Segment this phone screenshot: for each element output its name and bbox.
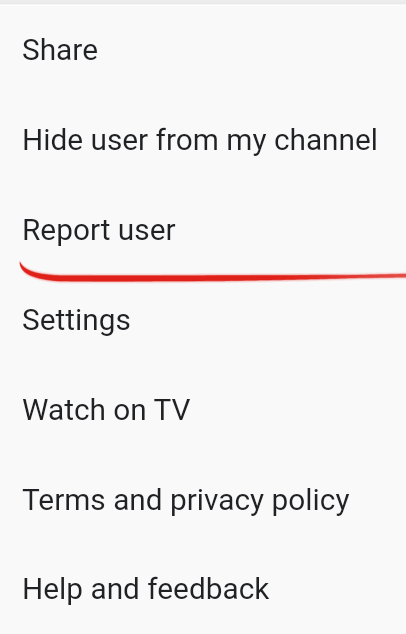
button[interactable]: Help and feedback bbox=[0, 546, 406, 634]
button[interactable]: Report user bbox=[0, 186, 406, 276]
button[interactable]: Hide user from my channel bbox=[0, 96, 406, 186]
staticText: Hide user from my channel bbox=[22, 122, 379, 157]
staticText: Share bbox=[22, 32, 98, 67]
button[interactable]: Share bbox=[0, 6, 406, 96]
staticText: Watch on TV bbox=[22, 392, 191, 427]
button[interactable]: Watch on TV bbox=[0, 366, 406, 456]
staticText: Report user bbox=[22, 212, 176, 247]
button[interactable]: Terms and privacy policy bbox=[0, 456, 406, 546]
staticText: Settings bbox=[22, 302, 131, 337]
staticText: Help and feedback bbox=[22, 571, 270, 606]
staticText: Terms and privacy policy bbox=[22, 482, 350, 517]
button[interactable]: Settings bbox=[0, 276, 406, 366]
